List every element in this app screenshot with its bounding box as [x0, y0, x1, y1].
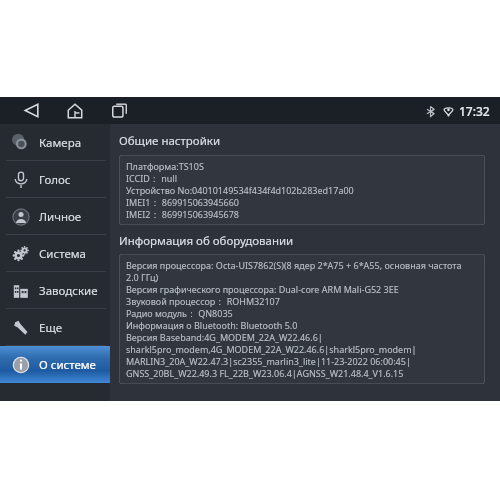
- staticText: MARLIN3_20A_W22.47.3|sc2355_marlin3_lite…: [126, 355, 411, 367]
- staticText: 2.0 ГГц): [126, 271, 159, 283]
- button[interactable]: Back: [14, 97, 48, 124]
- button[interactable]: О системе: [0, 346, 110, 383]
- staticText: ICCID： null: [126, 172, 177, 184]
- button[interactable]: Голос: [0, 161, 110, 198]
- staticText: Информация о Bluetooth: Bluetooth 5.0: [126, 319, 298, 331]
- staticText: Версия процессора: Octa-UIS7862(S)(8 яде…: [126, 259, 462, 271]
- button[interactable]: Home: [58, 97, 92, 124]
- staticText: Звуковой процессор： ROHM32107: [126, 295, 280, 307]
- staticText: Радио модуль： QN8035: [126, 307, 233, 319]
- button[interactable]: Заводские: [0, 272, 110, 309]
- staticText: Заводские: [39, 283, 98, 299]
- staticText: IMEI2： 869915063945678: [126, 208, 239, 220]
- button[interactable]: Камера: [0, 124, 110, 161]
- staticText: Устройство No:04010149534f434f4d102b283e…: [126, 184, 354, 196]
- staticText: Личное: [39, 209, 82, 225]
- button[interactable]: Личное: [0, 198, 110, 235]
- staticText: GNSS_20BL_W22.49.3 FL_22B_W23.06.4|AGNSS…: [126, 367, 404, 379]
- button[interactable]: Система: [0, 235, 110, 272]
- staticText: Версия Baseband:4G_MODEM_22A_W22.46.6|: [126, 331, 323, 343]
- staticText: 17:32: [459, 103, 490, 119]
- staticText: Камера: [39, 135, 82, 151]
- staticText: Голос: [39, 172, 71, 188]
- staticText: Общие настройки: [119, 133, 221, 149]
- staticText: Платформа:TS10S: [126, 160, 204, 172]
- staticText: Информация об оборудовании: [119, 233, 294, 249]
- staticText: Версия графического процессора: Dual-cor…: [126, 283, 399, 295]
- staticText: Еще: [39, 320, 63, 336]
- staticText: Система: [39, 246, 86, 262]
- button[interactable]: Recents: [102, 97, 136, 124]
- staticText: О системе: [39, 357, 96, 373]
- button[interactable]: Еще: [0, 309, 110, 346]
- staticText: IMEI1： 869915063945660: [126, 196, 239, 208]
- staticText: sharkl5pro_modem,4G_MODEM_22A_W22.46.6|s…: [126, 343, 417, 355]
